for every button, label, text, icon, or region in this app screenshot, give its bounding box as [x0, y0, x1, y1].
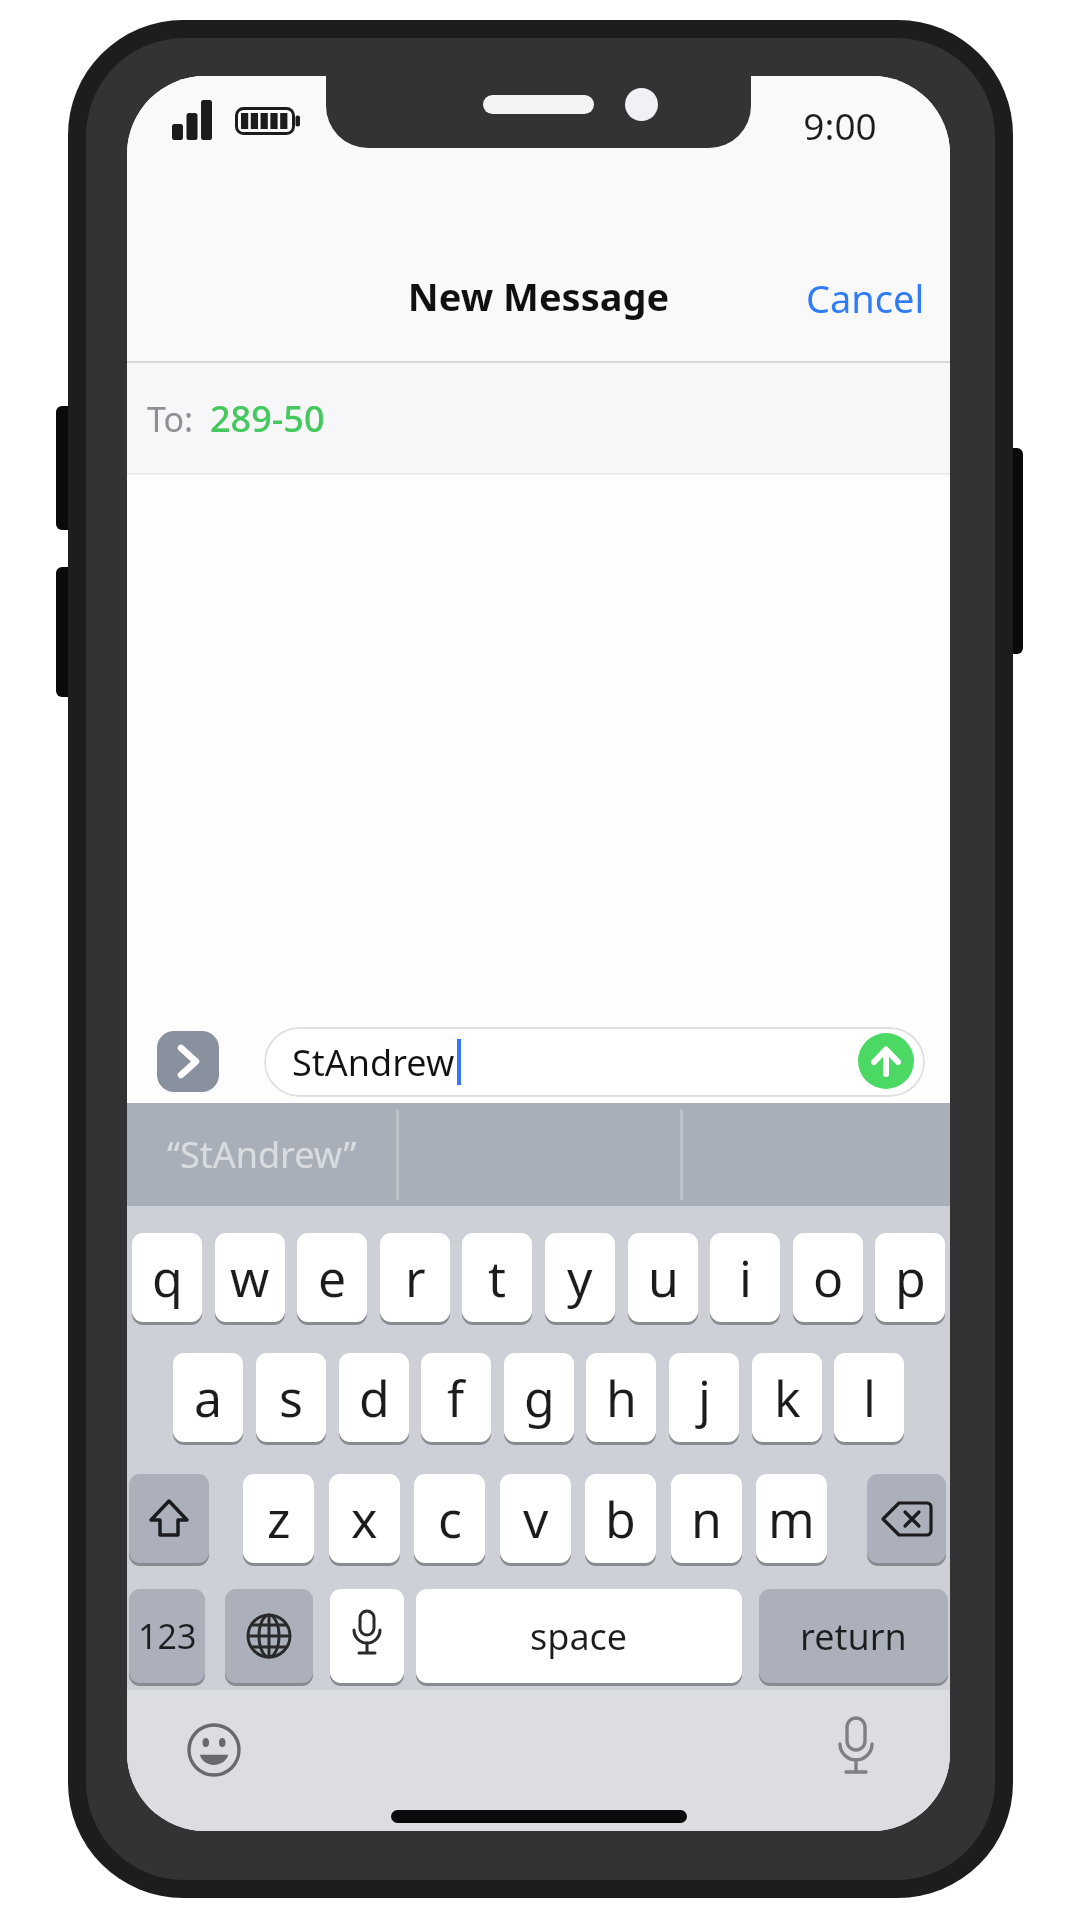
button[interactable]: To: [127, 363, 950, 474]
button[interactable] [330, 1589, 404, 1683]
staticText: Cancel [806, 272, 925, 324]
button[interactable]: g [504, 1353, 574, 1442]
staticText: m [768, 1485, 815, 1553]
button[interactable]: t [462, 1233, 532, 1322]
staticText: t [488, 1244, 507, 1312]
button[interactable]: return [759, 1589, 948, 1683]
staticText: r [405, 1244, 426, 1312]
button[interactable]: j [669, 1353, 739, 1442]
staticText: StAndrew [292, 1038, 455, 1087]
button[interactable] [186, 1722, 242, 1778]
button[interactable] [129, 1474, 209, 1563]
staticText: s [279, 1364, 303, 1432]
button[interactable]: l [834, 1353, 904, 1442]
button[interactable]: k [752, 1353, 822, 1442]
staticText: e [318, 1244, 347, 1312]
button[interactable]: w [215, 1233, 285, 1322]
staticText: “StAndrew” [167, 1130, 357, 1179]
button[interactable]: Cancel [727, 268, 927, 328]
button[interactable]: u [628, 1233, 698, 1322]
button[interactable]: m [756, 1474, 827, 1563]
staticText: 123 [138, 1613, 197, 1659]
staticText: w [230, 1244, 270, 1312]
button[interactable]: e [297, 1233, 367, 1322]
staticText: d [359, 1364, 390, 1432]
staticText: g [524, 1364, 555, 1432]
button[interactable]: z [243, 1474, 314, 1563]
staticText: p [895, 1244, 926, 1312]
button[interactable]: d [339, 1353, 409, 1442]
staticText: New Message [127, 270, 950, 322]
staticText: q [152, 1244, 183, 1312]
staticText: space [530, 1612, 628, 1661]
staticText: z [267, 1485, 291, 1553]
button[interactable]: x [329, 1474, 400, 1563]
staticText: b [605, 1485, 636, 1553]
staticText: n [691, 1485, 722, 1553]
staticText: a [194, 1364, 223, 1432]
staticText: l [863, 1364, 876, 1432]
button[interactable] [225, 1589, 313, 1683]
button[interactable]: y [545, 1233, 615, 1322]
staticText: return [800, 1612, 907, 1661]
button[interactable]: p [875, 1233, 945, 1322]
button[interactable]: h [586, 1353, 656, 1442]
button[interactable]: b [585, 1474, 656, 1563]
staticText: k [774, 1364, 801, 1432]
button[interactable]: r [380, 1233, 450, 1322]
staticText: i [739, 1244, 752, 1312]
staticText: v [523, 1485, 549, 1553]
staticText: y [567, 1244, 593, 1312]
staticText: u [648, 1244, 679, 1312]
button[interactable]: q [132, 1233, 202, 1322]
staticText: h [606, 1364, 637, 1432]
button[interactable]: v [500, 1474, 571, 1563]
button[interactable] [867, 1474, 946, 1563]
button[interactable]: s [256, 1353, 326, 1442]
button[interactable] [829, 1716, 883, 1784]
staticText: j [698, 1364, 711, 1432]
staticText: 289-50 [210, 394, 325, 443]
button[interactable]: i [710, 1233, 780, 1322]
button[interactable]: f [421, 1353, 491, 1442]
staticText: x [351, 1485, 378, 1553]
staticText: c [438, 1485, 462, 1553]
staticText: 9:00 [790, 100, 890, 150]
button[interactable]: “StAndrew” [127, 1103, 396, 1206]
button[interactable]: StAndrew [264, 1027, 925, 1097]
staticText: o [813, 1244, 844, 1312]
button[interactable]: 123 [129, 1589, 205, 1683]
button[interactable]: space [416, 1589, 742, 1683]
button[interactable] [858, 1033, 914, 1089]
button[interactable]: c [414, 1474, 485, 1563]
button[interactable]: n [671, 1474, 742, 1563]
staticText: To: [147, 396, 194, 442]
button[interactable] [157, 1031, 219, 1092]
button[interactable]: o [793, 1233, 863, 1322]
staticText: f [447, 1364, 465, 1432]
button[interactable]: a [173, 1353, 243, 1442]
